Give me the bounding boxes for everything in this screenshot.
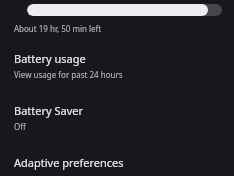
other: Battery level 93 percent: [27, 4, 222, 16]
staticText: Adaptive preferences: [14, 155, 124, 170]
staticText: View usage for past 24 hours: [14, 69, 123, 80]
staticText: Off: [14, 121, 26, 132]
staticText: Battery Saver: [14, 103, 84, 118]
button[interactable]: Battery Saver: [0, 100, 234, 135]
button[interactable]: Battery usage: [0, 48, 234, 83]
staticText: About 19 hr, 50 min left: [14, 23, 102, 34]
button[interactable]: Adaptive preferences: [0, 152, 234, 176]
staticText: Battery usage: [14, 51, 86, 66]
